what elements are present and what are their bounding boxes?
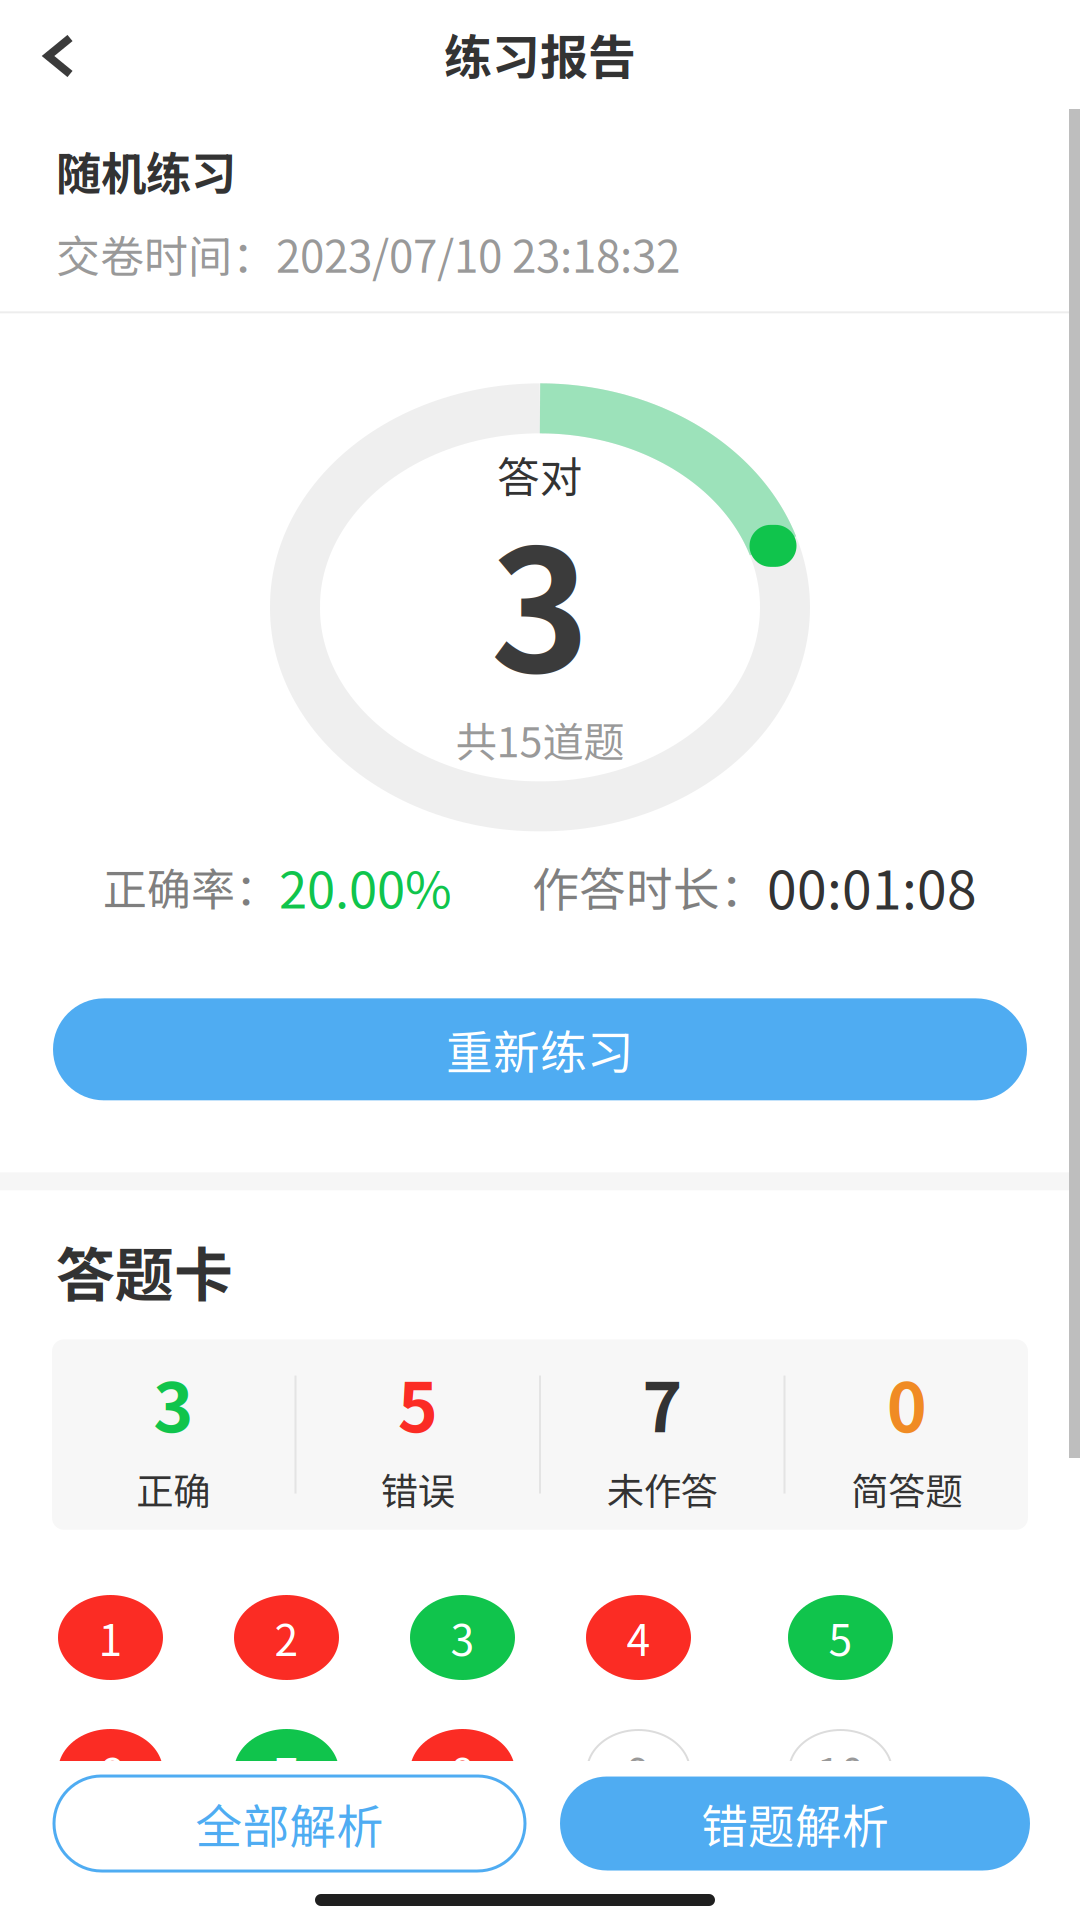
staticText: 错题解析 (701, 1790, 889, 1857)
button[interactable]: 重新练习 (53, 998, 1027, 1100)
button[interactable]: 8 (410, 1729, 515, 1814)
staticText: 2 (274, 1607, 298, 1668)
staticText: 答题卡 (56, 1228, 233, 1313)
button[interactable]: 7 (234, 1729, 339, 1814)
button[interactable]: 返回 (0, 0, 112, 108)
staticText: 5 (398, 1353, 438, 1452)
staticText: 正确 (136, 1462, 210, 1516)
staticText: 3 (490, 478, 589, 721)
button[interactable]: 9 (586, 1729, 691, 1814)
staticText: 全部解析 (195, 1790, 383, 1857)
staticText: 9 (626, 1741, 650, 1802)
staticText: 00:01:08 (767, 848, 977, 925)
staticText: 1 (98, 1607, 122, 1668)
staticText: 简答题 (851, 1462, 962, 1516)
staticText: 重新练习 (446, 1016, 634, 1083)
button[interactable]: 错题解析 (560, 1776, 1030, 1870)
button[interactable]: 10 (788, 1729, 893, 1814)
staticText: 7 (274, 1741, 298, 1802)
staticText: 作答时长： (532, 853, 767, 920)
staticText: 答对 (497, 443, 583, 505)
button[interactable]: 5 (788, 1595, 893, 1680)
staticText: 3 (450, 1607, 474, 1668)
button[interactable]: 全部解析 (54, 1776, 525, 1871)
staticText: 10 (816, 1741, 864, 1802)
button[interactable]: 6 (58, 1729, 163, 1814)
staticText: 0 (887, 1353, 927, 1452)
staticText: 随机练习 (56, 138, 236, 204)
staticText: 错误 (381, 1462, 455, 1516)
staticText: 5 (828, 1607, 852, 1668)
staticText: 8 (450, 1741, 474, 1802)
staticText: 7 (642, 1353, 682, 1452)
button[interactable]: 3 (410, 1595, 515, 1680)
staticText: 4 (626, 1607, 650, 1668)
button[interactable]: 4 (586, 1595, 691, 1680)
staticText: 正确率： (103, 854, 279, 918)
button[interactable]: 1 (58, 1595, 163, 1680)
staticText: 未作答 (607, 1462, 718, 1516)
staticText: 3 (153, 1353, 193, 1452)
staticText: 交卷时间：2023/07/10 23:18:32 (56, 222, 680, 285)
staticText: 练习报告 (444, 19, 636, 89)
staticText: 20.00% (279, 850, 452, 923)
staticText: 共15道题 (455, 709, 624, 769)
button[interactable]: 2 (234, 1595, 339, 1680)
staticText: 6 (98, 1741, 122, 1802)
